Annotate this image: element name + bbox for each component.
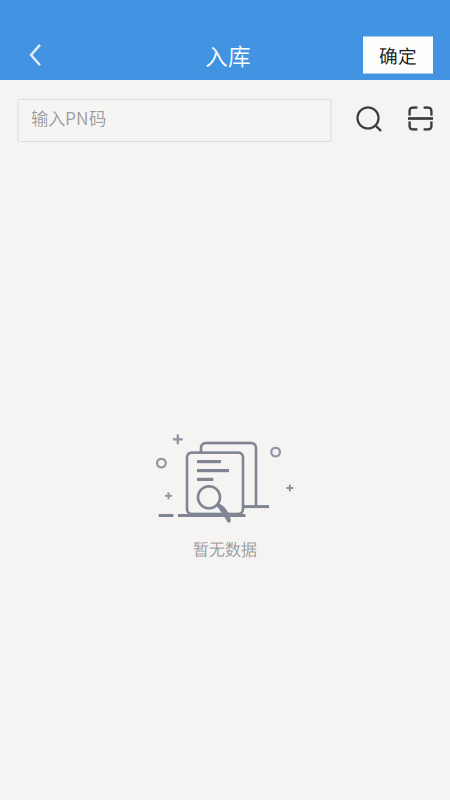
staticText: 确定	[379, 41, 417, 68]
button[interactable]: Search	[346, 96, 392, 142]
button[interactable]: Scan barcode	[397, 95, 443, 141]
button[interactable]: 确定	[363, 36, 433, 73]
staticText: 输入PN码	[31, 105, 106, 130]
button[interactable]: 输入PN码	[18, 99, 331, 141]
button[interactable]: Back	[7, 27, 63, 83]
staticText: 暂无数据	[193, 537, 257, 560]
staticText: 入库	[205, 39, 251, 71]
